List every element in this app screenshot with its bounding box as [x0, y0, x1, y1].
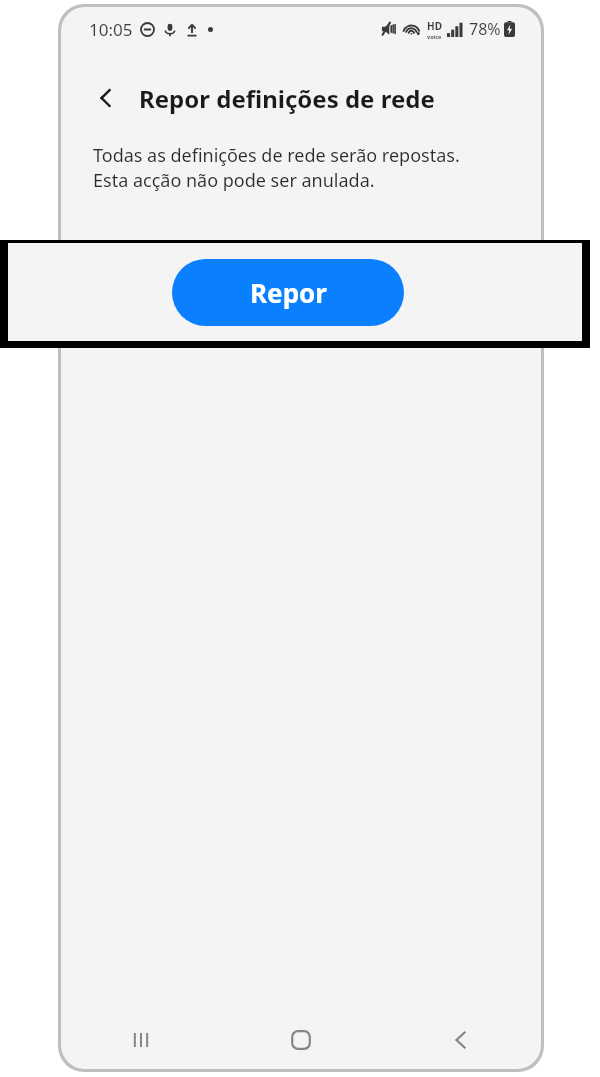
button[interactable]: Back: [381, 1011, 541, 1069]
staticText: 10:05: [89, 18, 133, 41]
button[interactable]: Repor: [172, 259, 404, 326]
staticText: Esta acção não pode ser anulada.: [93, 168, 375, 193]
staticText: 78%: [469, 18, 501, 40]
button[interactable]: Back: [85, 77, 127, 119]
button[interactable]: Recent apps: [61, 1011, 221, 1069]
button[interactable]: Home: [221, 1011, 381, 1069]
staticText: voice: [427, 33, 442, 40]
staticText: HD: [427, 19, 442, 33]
staticText: Repor definições de rede: [139, 82, 435, 115]
staticText: Repor: [250, 275, 327, 310]
staticText: Todas as definições de rede serão repost…: [93, 143, 460, 168]
